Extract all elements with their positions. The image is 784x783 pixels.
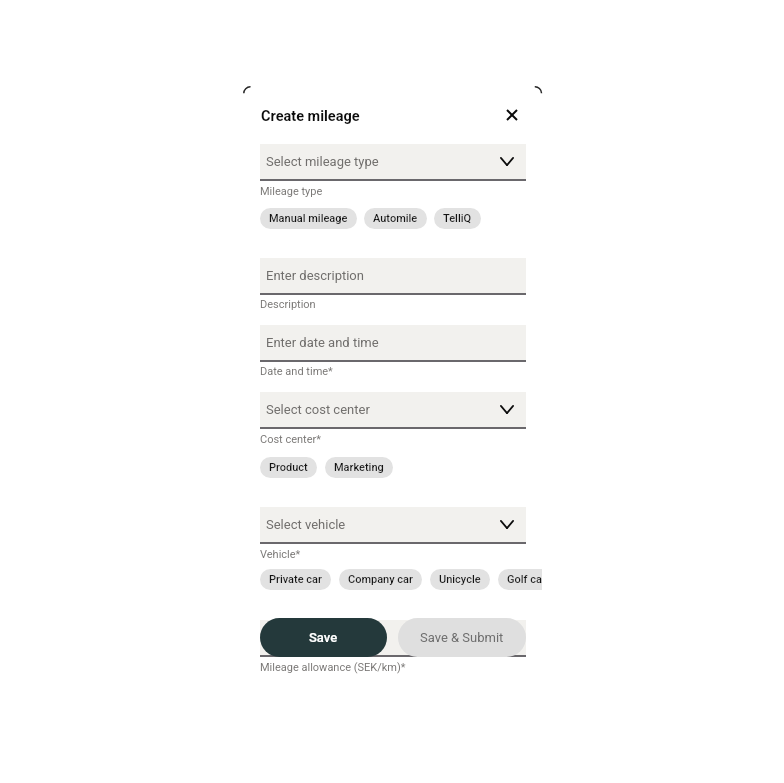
button[interactable]: Select vehicle — [260, 507, 526, 542]
button[interactable]: Manual mileage — [260, 208, 357, 229]
staticText: Save — [309, 630, 338, 645]
button[interactable]: Select mileage type — [260, 144, 526, 179]
button[interactable]: Unicycle — [430, 569, 490, 590]
staticText: TelliQ — [443, 212, 472, 225]
button[interactable]: Marketing — [325, 457, 393, 478]
button[interactable] — [260, 620, 526, 655]
staticText: Marketing — [334, 461, 384, 474]
staticText: Manual mileage — [269, 212, 348, 225]
button[interactable]: Automile — [364, 208, 427, 229]
button[interactable]: Company car — [339, 569, 422, 590]
button[interactable]: Golf cart — [498, 569, 542, 590]
button[interactable]: Save — [260, 618, 387, 657]
staticText: Golf cart — [507, 573, 542, 586]
button[interactable]: Select cost center — [260, 392, 526, 427]
staticText: Create mileage — [261, 108, 360, 125]
button[interactable]: TelliQ — [434, 208, 481, 229]
staticText: Vehicle* — [260, 548, 301, 561]
staticText: Enter date and time — [266, 335, 379, 350]
button[interactable]: Enter description — [260, 258, 526, 293]
button[interactable]: Save & Submit — [398, 618, 526, 657]
staticText: Private car — [269, 573, 322, 586]
staticText: Automile — [373, 212, 418, 225]
staticText: Select vehicle — [266, 517, 346, 532]
staticText: Cost center* — [260, 433, 321, 446]
staticText: Save & Submit — [420, 630, 504, 645]
staticText: Select cost center — [266, 402, 370, 417]
staticText: Description — [260, 298, 316, 311]
staticText: Enter description — [266, 268, 364, 283]
button[interactable]: Close — [500, 103, 523, 126]
staticText: Company car — [348, 573, 413, 586]
staticText: Unicycle — [439, 573, 481, 586]
button[interactable]: Enter date and time — [260, 325, 526, 360]
staticText: Mileage allowance (SEK/km)* — [260, 661, 406, 674]
staticText: Product — [269, 461, 308, 474]
button[interactable]: Private car — [260, 569, 331, 590]
staticText: Mileage type — [260, 185, 323, 198]
button[interactable]: Product — [260, 457, 317, 478]
staticText: Select mileage type — [266, 154, 379, 169]
staticText: Date and time* — [260, 365, 333, 378]
